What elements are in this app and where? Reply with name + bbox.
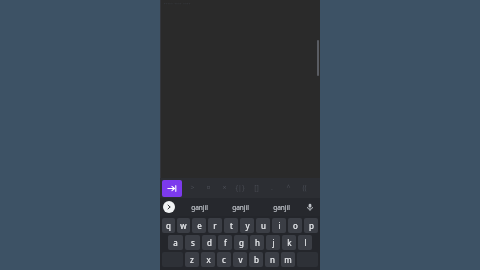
button[interactable]: z [185, 252, 199, 267]
staticText: y [245, 220, 250, 231]
button[interactable]: m [281, 252, 295, 267]
button[interactable]: x [201, 252, 215, 267]
button[interactable]: n [265, 252, 279, 267]
button[interactable]: Tab [162, 180, 182, 197]
button[interactable]: y [240, 218, 254, 233]
button[interactable]: o [288, 218, 302, 233]
staticText: ganjil [191, 203, 208, 212]
button[interactable]: w [177, 218, 190, 233]
button[interactable]: h [250, 235, 264, 250]
button[interactable]: [] [248, 179, 264, 197]
button[interactable]: b [249, 252, 263, 267]
staticText: v [238, 254, 243, 265]
staticText: x [206, 254, 211, 265]
button[interactable]: e [192, 218, 206, 233]
button[interactable]: {|} [232, 179, 248, 197]
button[interactable]: c [217, 252, 231, 267]
button[interactable]: l [298, 235, 312, 250]
button[interactable]: d [202, 235, 216, 250]
button[interactable]: Expand toolbar [163, 201, 175, 213]
button[interactable]: v [233, 252, 247, 267]
staticText: k [287, 237, 292, 248]
staticText: e [197, 220, 202, 231]
staticText: [] [254, 183, 259, 193]
staticText: s [191, 237, 195, 248]
staticText: w [180, 220, 187, 231]
staticText: {|} [235, 183, 245, 193]
button[interactable]: ganjil [261, 198, 302, 216]
button[interactable]: ganjil [220, 198, 261, 216]
staticText: b [254, 254, 259, 265]
staticText: . [271, 183, 273, 193]
staticText: m [284, 254, 292, 265]
button[interactable]: f [218, 235, 232, 250]
button[interactable]: ganjil [178, 198, 220, 216]
staticText: i [278, 220, 281, 231]
staticText: ¤ [206, 183, 211, 193]
button[interactable]: u [256, 218, 270, 233]
staticText: d [207, 237, 212, 248]
staticText: ganjil [232, 203, 249, 212]
staticText: j [272, 237, 275, 248]
button[interactable]: t [224, 218, 238, 233]
staticText: r [213, 220, 217, 231]
button[interactable]: g [234, 235, 248, 250]
staticText: f [224, 237, 227, 248]
staticText: u [261, 220, 266, 231]
button[interactable]: p [304, 218, 318, 233]
staticText: c [222, 254, 226, 265]
staticText: ganjil [273, 203, 290, 212]
staticText: (( [302, 183, 307, 193]
staticText: o [293, 220, 298, 231]
staticText: z [190, 254, 194, 265]
button[interactable]: i [272, 218, 286, 233]
staticText: g [239, 237, 244, 248]
button[interactable]: s [185, 235, 200, 250]
button[interactable]: a [168, 235, 183, 250]
button[interactable]: Voice input [303, 200, 317, 214]
staticText: a [173, 237, 178, 248]
staticText: q [166, 220, 171, 231]
staticText: n [270, 254, 275, 265]
staticText: l [304, 237, 307, 248]
staticText: ^ [286, 183, 291, 193]
button[interactable]: r [208, 218, 222, 233]
button[interactable]: k [282, 235, 296, 250]
staticText: p [309, 220, 314, 231]
staticText: × [222, 183, 227, 193]
button[interactable]: q [162, 218, 175, 233]
staticText: t [230, 220, 233, 231]
staticText: h [255, 237, 260, 248]
button[interactable]: (( [296, 179, 312, 197]
button[interactable]: j [266, 235, 280, 250]
staticText: > [190, 183, 195, 193]
